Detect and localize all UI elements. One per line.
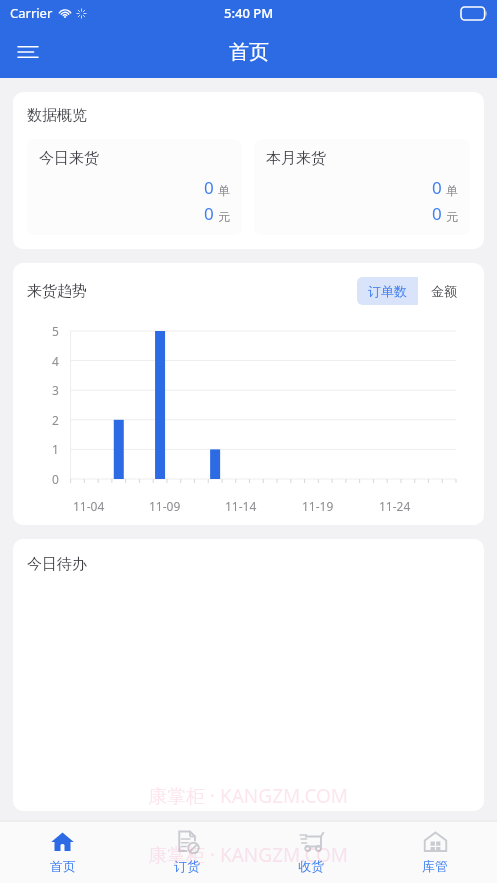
staticText: 11-04 [73,498,105,514]
staticText: 库管 [422,858,448,874]
staticText: 订单数 [368,283,407,299]
staticText: 康掌柜 · KANGZM.COM [148,842,349,868]
button[interactable]: 首页 [0,821,125,883]
button[interactable]: 收货 [249,821,373,883]
staticText: 本月来货 [266,149,326,168]
button[interactable]: 今日来货 [27,139,242,235]
staticText: 金额 [431,283,457,299]
staticText: 5:40 PM [224,4,274,22]
staticText: 今日待办 [27,555,87,574]
staticText: Carrier [10,4,53,22]
button[interactable]: 订单数 [357,277,418,305]
staticText: 康掌柜 · KANGZM.COM [148,783,349,809]
staticText: 2 [52,412,59,428]
staticText: 0 [432,176,442,199]
staticText: 5 [52,323,59,339]
staticText: 0 [52,471,59,487]
staticText: 11-09 [149,498,181,514]
staticText: 元 [218,209,230,224]
staticText: 今日来货 [39,149,99,168]
staticText: 单 [446,183,458,198]
button[interactable]: 金额 [418,277,470,305]
staticText: 首页 [229,40,269,65]
staticText: 来货趋势 [27,282,87,301]
button[interactable]: 订货 [125,821,249,883]
staticText: 数据概览 [27,106,87,125]
staticText: 单 [218,183,230,198]
staticText: 首页 [50,858,76,874]
staticText: 3 [52,382,59,398]
staticText: 0 [204,202,214,225]
staticText: 4 [52,353,59,369]
staticText: 11-19 [302,498,334,514]
staticText: 0 [204,176,214,199]
staticText: 订货 [174,858,200,874]
staticText: 11-14 [225,498,257,514]
staticText: 元 [446,209,458,224]
button[interactable]: Menu [6,30,50,74]
button[interactable]: 本月来货 [254,139,470,235]
staticText: 1 [52,441,59,457]
staticText: 11-24 [379,498,411,514]
staticText: 收货 [298,858,324,874]
button[interactable]: 库管 [373,821,497,883]
staticText: 0 [432,202,442,225]
